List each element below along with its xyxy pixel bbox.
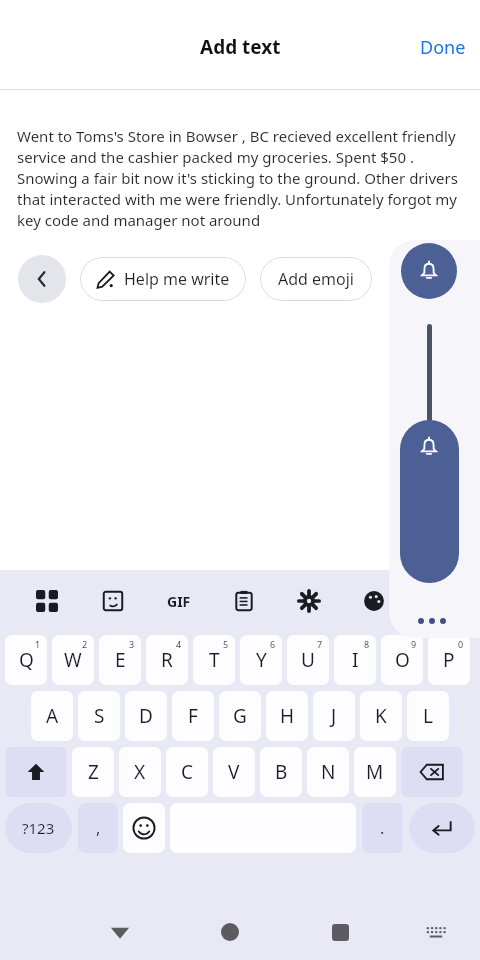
staticText: 8 [364, 638, 370, 650]
staticText: Done [420, 35, 466, 60]
button[interactable]: H [266, 691, 308, 741]
button[interactable]: GIF [146, 578, 211, 624]
staticText: H [280, 703, 295, 729]
staticText: V [228, 759, 240, 785]
staticText: Help me write [124, 268, 230, 290]
button[interactable]: P [428, 635, 470, 685]
staticText: Add text [200, 34, 281, 60]
staticText: M [366, 759, 384, 785]
staticText: 7 [317, 638, 323, 650]
staticText: Add emoji [278, 268, 354, 290]
button[interactable]: W [52, 635, 94, 685]
button[interactable]: Stickers [80, 578, 146, 624]
button[interactable]: J [313, 691, 355, 741]
button[interactable]: R [146, 635, 188, 685]
staticText: S [94, 703, 105, 729]
button[interactable]: Shift [5, 747, 67, 797]
button[interactable]: Emoji [123, 803, 165, 853]
staticText: J [331, 703, 337, 729]
staticText: O [395, 647, 410, 673]
staticText: 4 [176, 638, 182, 650]
button[interactable]: . [362, 803, 403, 853]
staticText: 0 [458, 638, 464, 650]
staticText: C [181, 759, 194, 785]
button[interactable]: Back [18, 255, 66, 303]
button[interactable]: Notification volume [400, 420, 459, 583]
staticText: 5 [223, 638, 229, 650]
staticText: 3 [129, 638, 135, 650]
button[interactable]: Enter [409, 803, 475, 853]
staticText: F [188, 703, 198, 729]
button[interactable]: Z [72, 747, 114, 797]
staticText: E [115, 647, 126, 673]
button[interactable]: M [354, 747, 396, 797]
staticText: 1 [35, 638, 41, 650]
staticText: GIF [167, 592, 191, 611]
button[interactable]: I [334, 635, 376, 685]
button[interactable]: Backspace [401, 747, 463, 797]
button[interactable]: E [99, 635, 141, 685]
staticText: Went to Toms's Store in Bowser , BC reci… [17, 126, 463, 231]
staticText: T [209, 647, 220, 673]
button[interactable]: Hide keyboard [96, 908, 144, 956]
button[interactable]: O [381, 635, 423, 685]
button[interactable]: Home [206, 908, 254, 956]
staticText: 2 [82, 638, 88, 650]
staticText: Q [19, 647, 34, 673]
button[interactable]: X [119, 747, 161, 797]
staticText: P [443, 647, 455, 673]
staticText: D [139, 703, 153, 729]
button[interactable]: , [78, 803, 118, 853]
button[interactable]: D [125, 691, 167, 741]
staticText: N [321, 759, 336, 785]
button[interactable]: More options [418, 618, 446, 624]
staticText: ?123 [22, 818, 55, 838]
button[interactable]: U [287, 635, 329, 685]
button[interactable]: Done [406, 27, 480, 68]
button[interactable]: A [31, 691, 73, 741]
staticText: U [301, 647, 315, 673]
staticText: A [46, 703, 59, 729]
button[interactable]: B [260, 747, 302, 797]
button[interactable]: Apps [14, 578, 80, 624]
button[interactable]: Switch keyboard [414, 910, 458, 954]
button[interactable]: S [78, 691, 120, 741]
button[interactable]: Q [5, 635, 47, 685]
button[interactable]: V [213, 747, 255, 797]
button[interactable]: Themes [341, 578, 406, 624]
staticText: R [161, 647, 173, 673]
button[interactable]: F [172, 691, 214, 741]
button[interactable]: G [219, 691, 261, 741]
button[interactable]: Y [240, 635, 282, 685]
button[interactable]: Ring mode [401, 243, 457, 299]
staticText: , [96, 817, 101, 839]
button[interactable]: Settings [276, 578, 341, 624]
staticText: X [134, 759, 146, 785]
button[interactable]: T [193, 635, 235, 685]
button[interactable]: Help me write [80, 257, 246, 301]
button[interactable]: Clipboard [211, 578, 276, 624]
staticText: K [375, 703, 387, 729]
button[interactable]: N [307, 747, 349, 797]
staticText: . [380, 817, 385, 839]
button[interactable]: Add emoji [260, 257, 372, 301]
staticText: W [64, 647, 82, 673]
button[interactable]: L [407, 691, 449, 741]
button[interactable]: C [166, 747, 208, 797]
staticText: Y [256, 647, 267, 673]
button[interactable]: K [360, 691, 402, 741]
staticText: G [233, 703, 247, 729]
staticText: I [352, 647, 359, 673]
staticText: L [423, 703, 433, 729]
button[interactable]: ?123 [5, 803, 72, 853]
staticText: 6 [270, 638, 276, 650]
staticText: B [275, 759, 288, 785]
button[interactable]: Recents [316, 908, 364, 956]
staticText: 9 [411, 638, 417, 650]
staticText: Z [88, 759, 99, 785]
